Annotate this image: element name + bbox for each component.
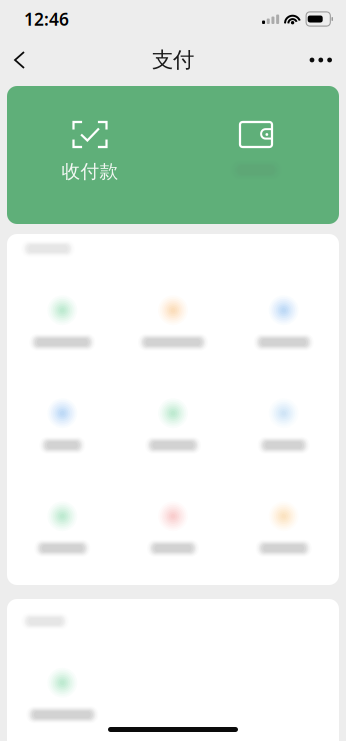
button[interactable]: Back xyxy=(0,38,55,82)
button[interactable]: Service xyxy=(7,394,118,497)
staticText: 支付 xyxy=(152,47,194,73)
button[interactable]: Service xyxy=(118,497,228,600)
button[interactable]: Service xyxy=(228,291,339,394)
button[interactable]: Wallet xyxy=(173,86,339,224)
button[interactable]: Service xyxy=(118,291,228,394)
button[interactable]: More xyxy=(288,38,346,82)
staticText: 12:46 xyxy=(24,7,69,30)
button[interactable]: Service xyxy=(7,497,118,600)
button[interactable]: Service xyxy=(228,394,339,497)
staticText: 收付款 xyxy=(61,160,118,183)
button[interactable]: Service xyxy=(7,291,118,394)
button[interactable]: Service xyxy=(7,664,118,741)
button[interactable]: Service xyxy=(118,394,228,497)
button[interactable]: 收付款 xyxy=(7,86,173,224)
button[interactable]: Service xyxy=(228,497,339,600)
